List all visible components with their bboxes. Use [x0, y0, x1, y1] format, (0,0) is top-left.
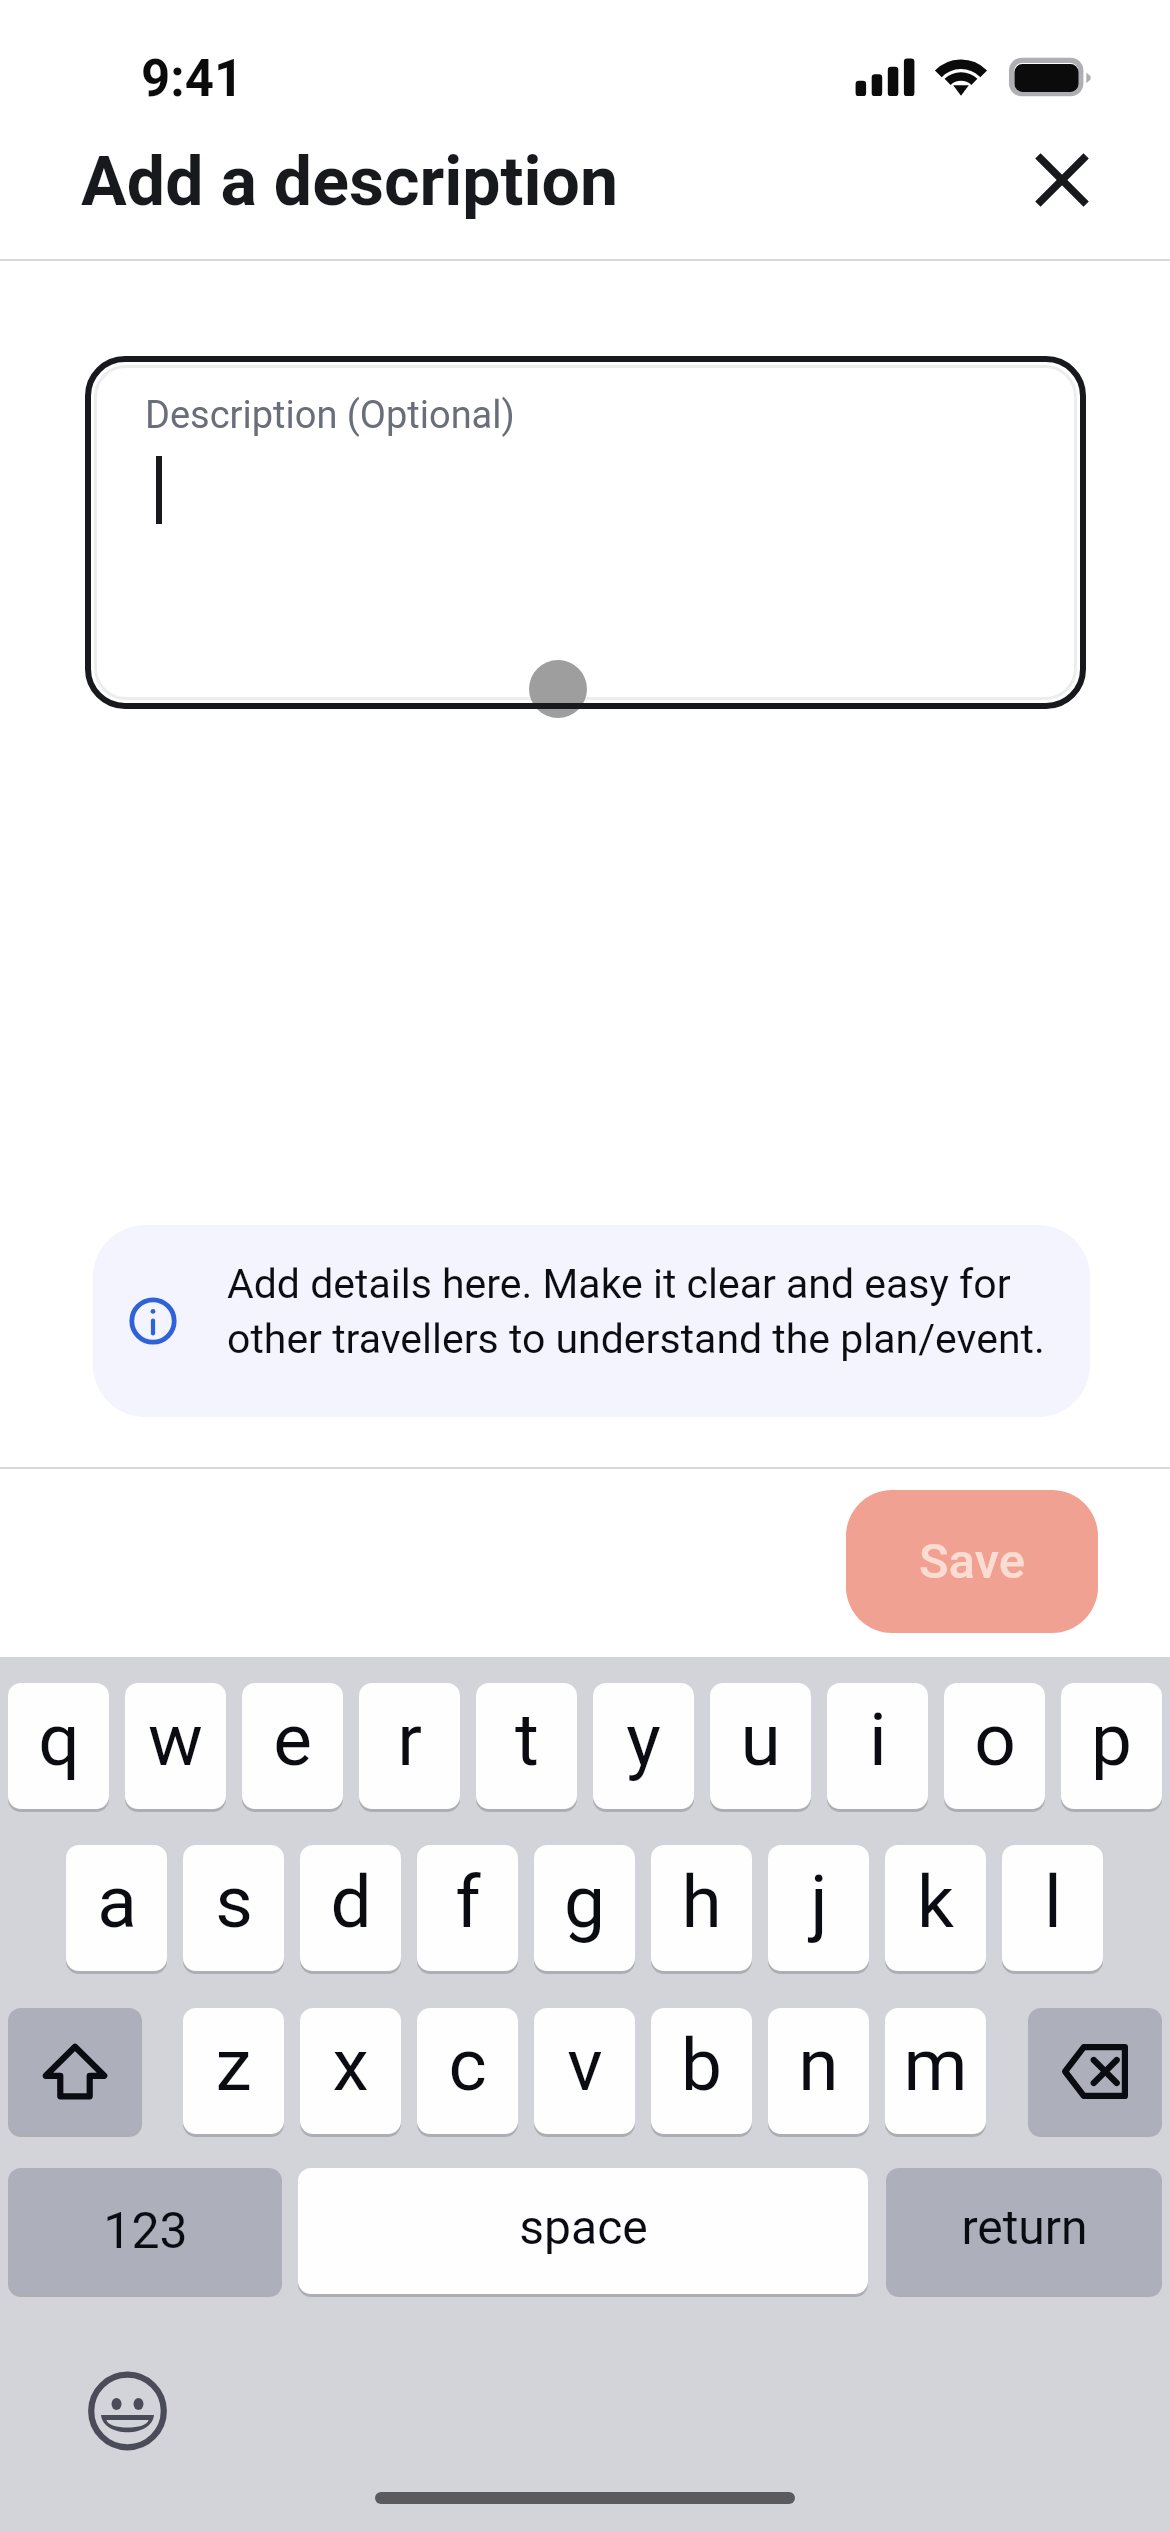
button[interactable]: y [593, 1683, 694, 1809]
button[interactable]: n [768, 2008, 869, 2134]
staticText: space [519, 2199, 648, 2255]
button[interactable]: u [710, 1683, 811, 1809]
staticText: u [740, 1697, 781, 1783]
button[interactable]: Close [1014, 132, 1110, 228]
staticText: b [681, 2022, 722, 2108]
staticText: Add a description [81, 142, 619, 222]
button[interactable]: h [651, 1845, 752, 1971]
staticText: z [215, 2022, 252, 2108]
staticText: a [97, 1859, 137, 1945]
staticText: w [148, 1697, 203, 1783]
button[interactable]: return [886, 2168, 1162, 2294]
button[interactable]: q [8, 1683, 109, 1809]
staticText: j [810, 1859, 828, 1945]
staticText: g [564, 1859, 605, 1945]
button[interactable]: Emoji keyboard [84, 2367, 172, 2455]
button[interactable]: o [944, 1683, 1045, 1809]
button[interactable]: f [417, 1845, 518, 1971]
button[interactable]: space [298, 2168, 868, 2294]
staticText: m [903, 2022, 968, 2108]
staticText: x [332, 2022, 369, 2108]
staticText: c [448, 2022, 487, 2108]
button[interactable]: Save [846, 1490, 1098, 1633]
staticText: e [273, 1697, 312, 1783]
button[interactable]: Shift [8, 2008, 142, 2134]
button[interactable]: w [125, 1683, 226, 1809]
staticText: v [567, 2022, 603, 2108]
button[interactable]: s [183, 1845, 284, 1971]
button[interactable]: m [885, 2008, 986, 2134]
staticText: p [1091, 1697, 1132, 1783]
button[interactable]: Description (Optional) [85, 356, 1086, 709]
button[interactable]: k [885, 1845, 986, 1971]
staticText: Add details here. Make it clear and easy… [227, 1260, 1090, 1363]
button[interactable]: r [359, 1683, 460, 1809]
button[interactable]: p [1061, 1683, 1162, 1809]
staticText: Description (Optional) [145, 393, 515, 438]
staticText: s [215, 1859, 253, 1945]
button[interactable]: Add details here. Make it clear and easy… [93, 1225, 1090, 1417]
staticText: y [626, 1697, 661, 1783]
button[interactable]: v [534, 2008, 635, 2134]
staticText: i [869, 1697, 887, 1783]
staticText: r [397, 1697, 422, 1783]
button[interactable]: c [417, 2008, 518, 2134]
button[interactable]: j [768, 1845, 869, 1971]
staticText: n [798, 2022, 839, 2108]
staticText: 9:41 [141, 49, 244, 109]
button[interactable]: b [651, 2008, 752, 2134]
staticText: k [917, 1859, 954, 1945]
button[interactable]: l [1002, 1845, 1103, 1971]
staticText: h [681, 1859, 722, 1945]
staticText: Save [919, 1533, 1026, 1590]
button[interactable]: a [66, 1845, 167, 1971]
button[interactable]: x [300, 2008, 401, 2134]
staticText: return [961, 2199, 1088, 2255]
staticText: f [455, 1859, 481, 1945]
button[interactable]: i [827, 1683, 928, 1809]
staticText: t [515, 1697, 539, 1783]
button[interactable]: z [183, 2008, 284, 2134]
button[interactable]: Backspace [1028, 2008, 1162, 2134]
staticText: q [38, 1697, 80, 1783]
button[interactable]: d [300, 1845, 401, 1971]
button[interactable]: Resize field [529, 660, 587, 718]
button[interactable]: 123 [8, 2168, 282, 2294]
button[interactable]: e [242, 1683, 343, 1809]
staticText: o [974, 1697, 1016, 1783]
staticText: d [330, 1859, 372, 1945]
button[interactable]: g [534, 1845, 635, 1971]
staticText: 123 [103, 2202, 188, 2261]
staticText: l [1044, 1859, 1062, 1945]
button[interactable]: t [476, 1683, 577, 1809]
